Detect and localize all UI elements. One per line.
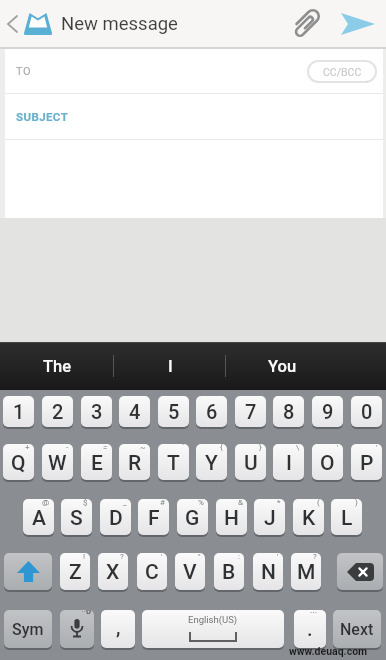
button[interactable]: K — [293, 499, 324, 535]
button[interactable]: U — [235, 444, 266, 480]
staticText: English(US) — [188, 614, 238, 625]
staticText: - — [66, 444, 69, 452]
staticText: . — [307, 617, 313, 640]
button[interactable]: D — [100, 499, 131, 535]
staticText: & — [238, 499, 243, 507]
button[interactable]: L — [331, 499, 362, 535]
staticText: K — [302, 506, 316, 531]
button[interactable]: ··✿ — [60, 610, 94, 648]
button[interactable]: F — [138, 499, 169, 535]
staticText: S — [70, 506, 83, 531]
button[interactable] — [334, 0, 382, 47]
button[interactable]: 1 — [3, 396, 34, 427]
button[interactable]: Y — [196, 444, 227, 480]
button[interactable]: C — [137, 553, 167, 590]
staticText: M — [297, 560, 316, 585]
staticText: ··· — [310, 610, 318, 619]
button[interactable]: SUBJECT — [5, 94, 383, 139]
button[interactable]: TO — [5, 49, 383, 93]
staticText: 8 — [283, 400, 295, 423]
button[interactable]: Z — [60, 553, 90, 590]
button[interactable]: B — [214, 553, 244, 590]
staticText: Sym — [12, 620, 44, 639]
staticText: F — [148, 506, 160, 531]
button[interactable]: G — [177, 499, 208, 535]
staticText: E — [91, 451, 103, 476]
staticText: * — [277, 499, 281, 507]
button[interactable]: W — [42, 444, 73, 480]
staticText: Z — [69, 560, 82, 585]
staticText: ' — [376, 444, 378, 452]
button[interactable] — [0, 0, 24, 47]
staticText: ` — [182, 444, 185, 452]
button[interactable]: Next — [333, 610, 381, 648]
button[interactable]: S — [61, 499, 92, 535]
button[interactable]: X — [98, 553, 128, 590]
button[interactable]: 3 — [81, 396, 112, 427]
button[interactable]: Sym — [4, 610, 52, 648]
button[interactable]: 4 — [119, 396, 150, 427]
button[interactable]: J — [254, 499, 285, 535]
staticText: TO — [16, 65, 31, 78]
button[interactable]: H — [216, 499, 247, 535]
button[interactable]: 5 — [158, 396, 189, 427]
button[interactable]: T — [158, 444, 189, 480]
button[interactable]: The — [12, 342, 102, 390]
staticText: : — [238, 553, 240, 561]
button[interactable]: M — [291, 553, 321, 590]
button[interactable]: 8 — [273, 396, 304, 427]
button[interactable]: 2 — [42, 396, 73, 427]
button[interactable]: I — [125, 342, 215, 390]
button[interactable]: O — [312, 444, 343, 480]
button[interactable]: CC/BCC — [307, 60, 377, 83]
staticText: 2 — [52, 400, 64, 423]
staticText: @ — [42, 499, 50, 507]
staticText: , — [116, 615, 121, 638]
button[interactable] — [4, 553, 52, 590]
staticText: V — [183, 560, 197, 585]
button[interactable]: P — [351, 444, 382, 480]
button[interactable]: V — [175, 553, 205, 590]
staticText: O — [320, 451, 335, 476]
staticText: P — [360, 451, 374, 476]
button[interactable] — [337, 553, 383, 590]
staticText: 3 — [91, 400, 103, 423]
staticText: G — [185, 506, 200, 531]
button[interactable]: 6 — [196, 396, 227, 427]
staticText: \ — [296, 444, 300, 452]
button[interactable]: I — [273, 444, 304, 480]
staticText: ~ — [140, 444, 146, 452]
staticText: 4 — [129, 400, 141, 423]
button[interactable]: You — [237, 342, 327, 390]
staticText: L — [341, 506, 353, 531]
staticText: Next — [340, 620, 374, 639]
button[interactable]: 0 — [351, 396, 382, 427]
staticText: ! — [83, 553, 86, 561]
staticText: T — [167, 451, 180, 476]
button[interactable]: 7 — [235, 396, 266, 427]
button[interactable]: , — [101, 610, 135, 648]
button[interactable]: E — [81, 444, 112, 480]
button[interactable]: A — [23, 499, 54, 535]
button[interactable] — [282, 0, 328, 47]
staticText: 6 — [206, 400, 218, 423]
button[interactable]: . — [294, 610, 326, 648]
button[interactable]: Q — [3, 444, 34, 480]
staticText: ' — [277, 553, 279, 561]
staticText: W — [48, 451, 67, 476]
staticText: I — [286, 451, 292, 476]
staticText: ? — [313, 553, 317, 561]
staticText: The — [43, 357, 72, 376]
staticText: CC/BCC — [323, 66, 362, 78]
staticText: H — [224, 506, 239, 531]
button[interactable]: N — [253, 553, 283, 590]
staticText: _ — [123, 499, 127, 507]
staticText: { — [220, 444, 223, 452]
staticText: 1 — [13, 400, 25, 423]
button[interactable]: 9 — [312, 396, 343, 427]
staticText: " — [198, 553, 201, 561]
button[interactable]: English(US) — [142, 610, 284, 648]
button[interactable]: R — [119, 444, 150, 480]
staticText: ··✿ — [82, 610, 92, 616]
